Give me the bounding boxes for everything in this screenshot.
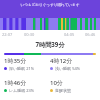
staticText: 04:05	[64, 32, 75, 37]
staticText: いつもどおりぐっすり眠れています	[0, 3, 100, 8]
button[interactable]: 4時12分	[50, 57, 96, 71]
staticText: 7時間39分	[0, 40, 100, 48]
staticText: 浅い睡眠 54%	[55, 66, 81, 71]
staticText: 1時46分	[4, 79, 27, 87]
staticText: 06:46	[85, 32, 96, 37]
staticText: 深い睡眠 21%	[9, 66, 35, 71]
staticText: 4時12分	[50, 57, 73, 65]
button[interactable]: 1時46分	[4, 79, 50, 93]
button[interactable]: 1時35分	[4, 57, 50, 71]
staticText: 00:30	[24, 32, 35, 37]
staticText: 10分	[50, 79, 63, 87]
button[interactable]: 10分	[50, 79, 96, 93]
staticText: レム睡眠 23%	[9, 88, 35, 93]
staticText: 22:07	[2, 32, 13, 37]
staticText: 1時35分	[4, 57, 27, 65]
staticText: 覚醒状態	[55, 88, 71, 93]
